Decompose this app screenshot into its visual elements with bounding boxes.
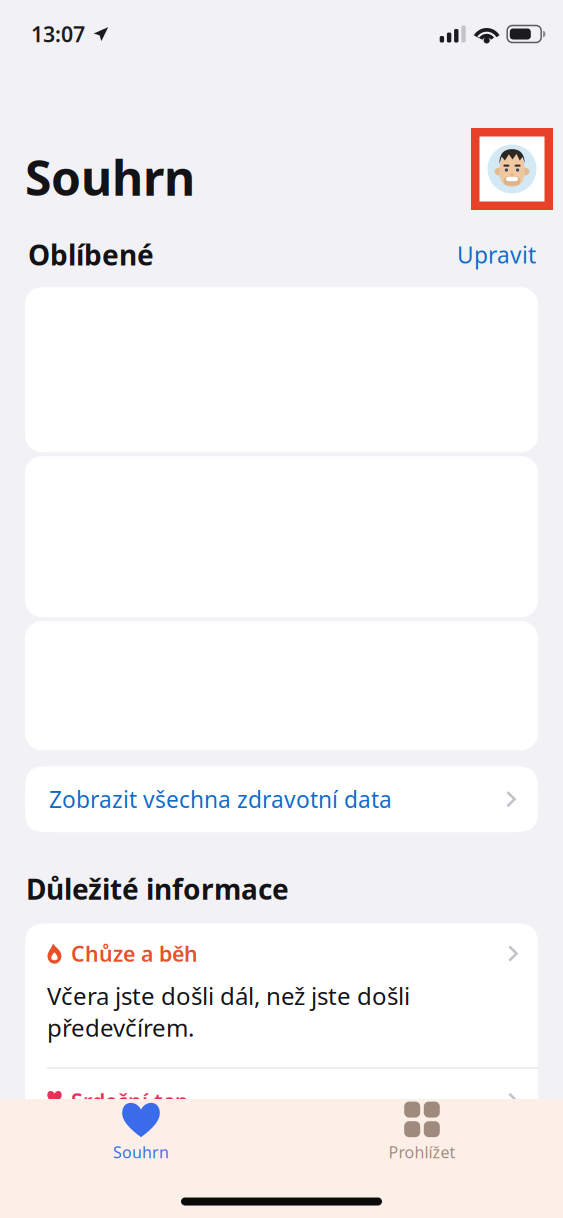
staticText: 13:07 [31, 20, 85, 48]
staticText: Srdeční tep [71, 1087, 188, 1115]
staticText: Souhrn [25, 145, 195, 209]
staticText: Zobrazit všechna zdravotní data [49, 784, 392, 814]
button[interactable]: Profil [471, 128, 553, 210]
staticText: Chůze a běh [71, 939, 198, 968]
staticText: Důležité informace [26, 870, 289, 907]
staticText: Prohlížet [388, 1141, 455, 1163]
button[interactable]: Chůze a běh [25, 923, 538, 1067]
button[interactable]: Srdeční tep [25, 1069, 538, 1115]
button[interactable]: Souhrn [0, 1099, 281, 1177]
staticText: Upravit [457, 239, 536, 270]
staticText: Oblíbené [28, 236, 154, 273]
staticText: Včera jste došli dál, než jste došli pře… [47, 980, 410, 1043]
button[interactable]: Zobrazit všechna zdravotní data [25, 766, 538, 832]
button[interactable]: Upravit [457, 239, 536, 270]
button[interactable]: Prohlížet [281, 1099, 562, 1177]
staticText: Souhrn [113, 1141, 169, 1163]
